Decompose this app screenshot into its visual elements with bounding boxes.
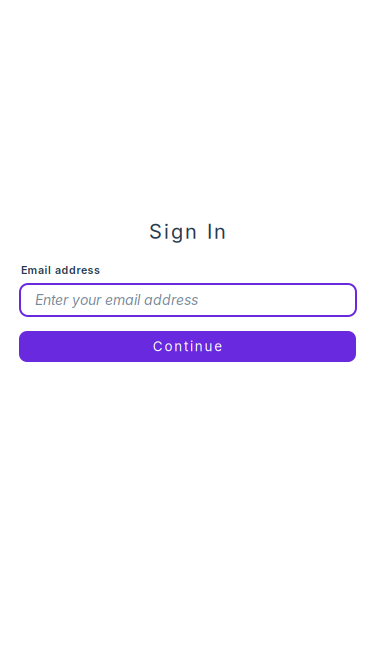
staticText: Continue — [153, 338, 222, 354]
staticText: Sign In — [149, 219, 226, 244]
staticText: Enter your email address — [35, 291, 198, 308]
button[interactable]: Enter your email address — [20, 284, 356, 316]
button[interactable]: Continue — [19, 331, 356, 362]
staticText: Email address — [21, 263, 100, 276]
